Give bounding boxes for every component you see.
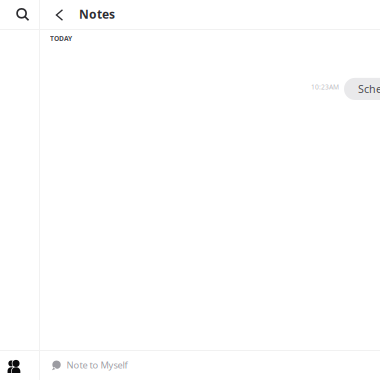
button[interactable]: Search [0, 0, 40, 30]
staticText: TODAY [50, 34, 72, 43]
staticText: Note to Myself [66, 359, 127, 371]
staticText: Schedule a meeting [358, 82, 380, 96]
button[interactable]: Contacts [0, 350, 40, 380]
button[interactable]: Note to Myself [40, 350, 380, 380]
button[interactable]: Back [47, 0, 71, 30]
staticText: 10:23AM [311, 82, 339, 91]
staticText: Notes [79, 6, 115, 22]
